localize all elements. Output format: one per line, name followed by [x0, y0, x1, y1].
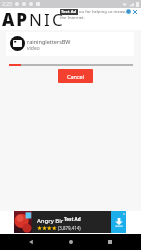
button[interactable]: Cancel — [58, 69, 93, 83]
staticText: NIC — [29, 8, 66, 31]
button[interactable]: Angry Bir — [14, 211, 126, 233]
button[interactable]: Home — [63, 234, 79, 250]
staticText: Test Ad — [64, 216, 81, 222]
staticText: Cancel — [67, 73, 85, 80]
button[interactable]: Close ad — [131, 8, 138, 15]
button[interactable]: Recent apps — [102, 234, 118, 250]
button[interactable]: Back — [23, 234, 39, 250]
button[interactable]: Ad choices — [125, 8, 132, 15]
button[interactable]: raininglettersBW — [6, 32, 134, 56]
button[interactable]: Install — [111, 211, 126, 233]
staticText: 2:23 — [2, 1, 12, 8]
staticText: ★★★★ — [37, 225, 57, 231]
staticText: video — [27, 45, 40, 52]
staticText: Angry Bir — [37, 217, 64, 225]
staticText: x — [123, 211, 126, 216]
staticText: the Internet. — [60, 15, 85, 21]
staticText: (3,879,414) — [58, 225, 81, 231]
staticText: ou for helping us measu — [79, 9, 127, 15]
staticText: Test Ad — [61, 9, 77, 15]
staticText: raininglettersBW — [27, 38, 71, 45]
staticText: AP — [2, 8, 29, 31]
